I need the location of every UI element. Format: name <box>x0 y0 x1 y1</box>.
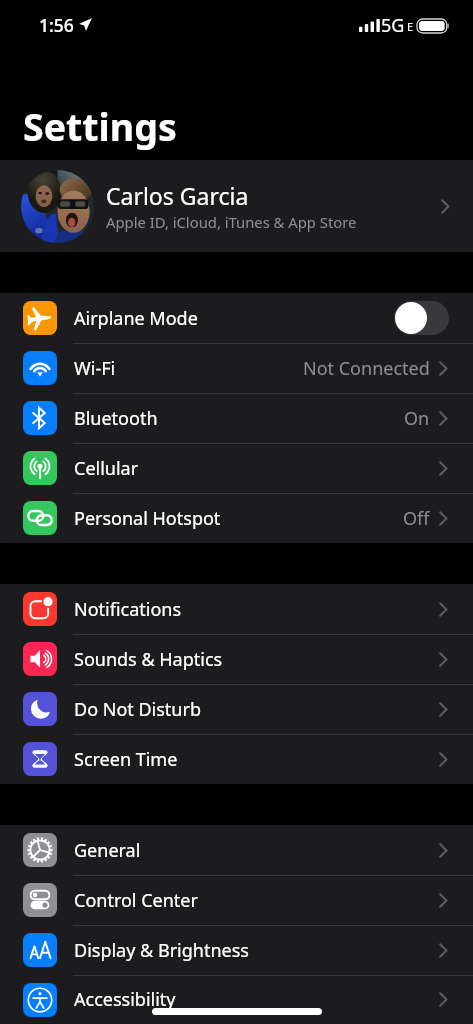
other: Open <box>439 511 449 526</box>
staticText: Accessibility <box>74 987 176 1012</box>
button[interactable]: Personal Hotspot <box>0 493 473 543</box>
button[interactable]: Accessibility <box>0 975 473 1024</box>
other: Open <box>439 893 449 908</box>
staticText: Apple ID, iCloud, iTunes & App Store <box>106 212 357 232</box>
button[interactable]: Toggle Airplane Mode <box>394 301 449 335</box>
staticText: Notifications <box>74 597 182 622</box>
other: Open <box>439 652 449 667</box>
staticText: Not Connected <box>303 356 430 381</box>
staticText: Wi-Fi <box>74 356 116 381</box>
button[interactable]: Notifications <box>0 584 473 634</box>
staticText: On <box>404 406 430 431</box>
other: Open <box>441 199 451 214</box>
staticText: 1:56 <box>39 13 74 37</box>
other: Open <box>439 602 449 617</box>
button[interactable]: Do Not Disturb <box>0 684 473 734</box>
staticText: Airplane Mode <box>74 306 198 331</box>
staticText: Settings <box>23 101 177 152</box>
staticText: Display & Brightness <box>74 938 249 963</box>
button[interactable]: Screen Time <box>0 734 473 784</box>
button[interactable]: Wi-Fi <box>0 343 473 393</box>
other: Open <box>439 361 449 376</box>
staticText: Sounds & Haptics <box>74 647 223 672</box>
staticText: Off <box>403 506 430 531</box>
button[interactable]: Carlos Garcia <box>0 160 473 252</box>
staticText: Bluetooth <box>74 406 158 431</box>
button[interactable]: Display & Brightness <box>0 925 473 975</box>
staticText: E <box>407 19 414 34</box>
other: Open <box>439 411 449 426</box>
staticText: Cellular <box>74 456 139 481</box>
staticText: Screen Time <box>74 747 178 772</box>
other: Open <box>439 943 449 958</box>
button[interactable]: Cellular <box>0 443 473 493</box>
staticText: Do Not Disturb <box>74 697 201 722</box>
other: Open <box>439 752 449 767</box>
button[interactable]: General <box>0 825 473 875</box>
staticText: Personal Hotspot <box>74 506 221 531</box>
button[interactable]: Bluetooth <box>0 393 473 443</box>
button[interactable]: Sounds & Haptics <box>0 634 473 684</box>
other: Open <box>439 843 449 858</box>
button[interactable]: Airplane Mode <box>0 293 473 343</box>
staticText: 5G <box>381 13 405 38</box>
button[interactable]: Control Center <box>0 875 473 925</box>
other: Open <box>439 702 449 717</box>
staticText: General <box>74 838 141 863</box>
staticText: Control Center <box>74 888 198 913</box>
other: Open <box>439 992 449 1007</box>
other: Open <box>439 461 449 476</box>
staticText: Carlos Garcia <box>106 180 249 211</box>
